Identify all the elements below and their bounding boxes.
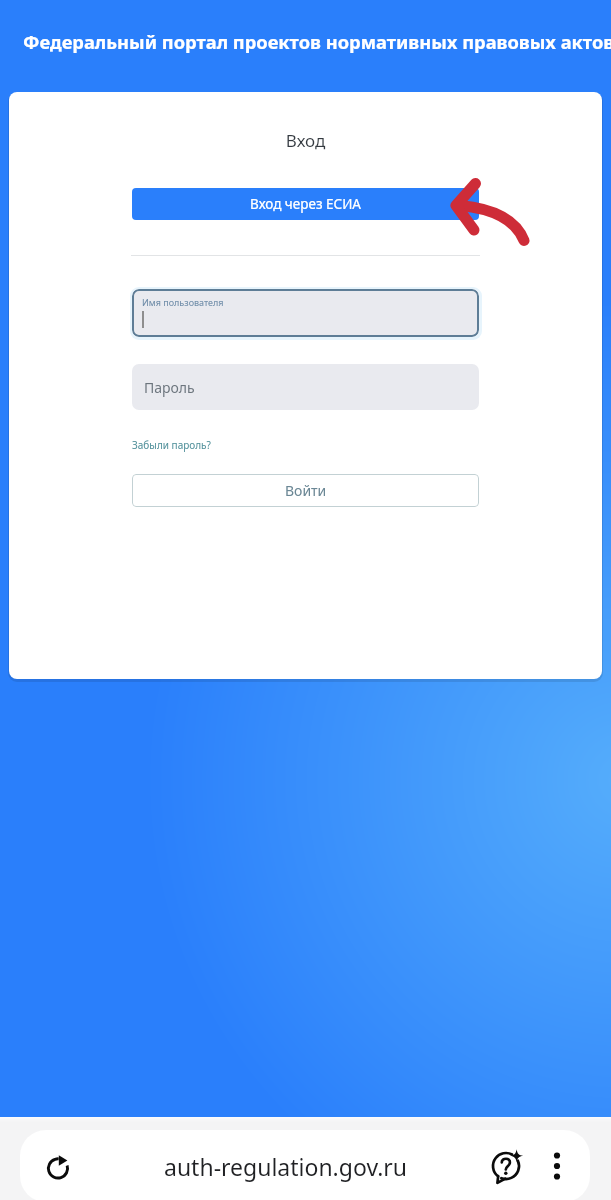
button[interactable]: Reload: [26, 1136, 90, 1198]
button[interactable]: Имя пользователя: [132, 289, 479, 337]
button[interactable]: Забыли пароль?: [132, 438, 211, 452]
staticText: auth-regulation.gov.ru: [164, 1151, 408, 1182]
button[interactable]: Вход через ЕСИА: [132, 188, 479, 220]
staticText: Вход: [9, 129, 602, 152]
staticText: Войти: [285, 481, 327, 500]
button[interactable]: Войти: [132, 474, 479, 507]
staticText: Имя пользователя: [142, 296, 224, 308]
staticText: Вход через ЕСИА: [250, 195, 361, 213]
staticText: Пароль: [144, 378, 195, 397]
button[interactable]: Ask about this page: [478, 1135, 534, 1197]
staticText: Федеральный портал проектов нормативных …: [23, 29, 611, 54]
button[interactable]: Пароль: [132, 364, 479, 410]
staticText: Забыли пароль?: [132, 438, 211, 452]
button[interactable]: More options: [527, 1135, 587, 1197]
